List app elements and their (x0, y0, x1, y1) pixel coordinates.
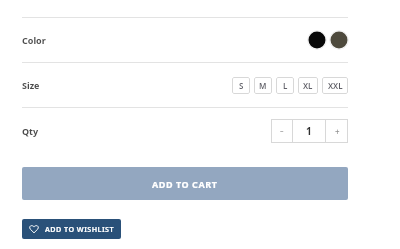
staticText: S (239, 80, 244, 91)
staticText: 1 (306, 124, 312, 138)
staticText: XL (303, 80, 313, 91)
staticText: ADD TO CART (152, 178, 218, 190)
staticText: ADD TO WISHLIST (45, 224, 114, 234)
staticText: Color (22, 34, 46, 46)
button[interactable]: Olive colour (329, 30, 349, 50)
staticText: M (259, 80, 267, 91)
staticText: L (283, 80, 288, 91)
staticText: Size (22, 79, 40, 91)
staticText: XXL (328, 80, 343, 91)
button[interactable]: ADD TO CART (22, 167, 348, 200)
button[interactable]: L (276, 77, 294, 94)
button[interactable]: ADD TO WISHLIST (22, 219, 121, 239)
staticText: + (335, 126, 340, 137)
button[interactable]: Black colour (307, 30, 327, 50)
button[interactable]: XXL (322, 77, 348, 94)
staticText: – (280, 126, 284, 136)
button[interactable]: S (232, 77, 250, 94)
button[interactable]: XL (298, 77, 318, 94)
staticText: Qty (22, 125, 39, 137)
button[interactable]: Increase quantity (326, 119, 348, 143)
button[interactable]: Decrease quantity (271, 119, 292, 143)
button[interactable]: M (254, 77, 272, 94)
